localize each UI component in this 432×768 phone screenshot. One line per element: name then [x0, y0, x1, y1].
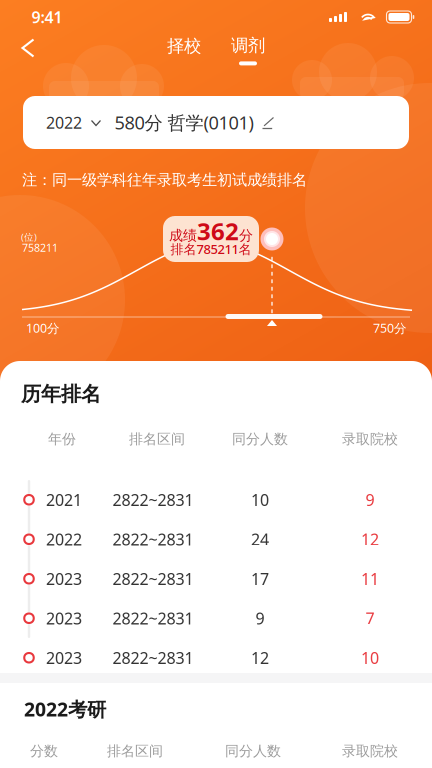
staticText: 2022 — [46, 529, 82, 550]
staticText: 9 — [255, 608, 264, 629]
staticText: 2822~2831 — [112, 647, 193, 668]
staticText: 12 — [361, 529, 379, 550]
staticText: 注：同一级学科往年录取考生初试成绩排名 — [22, 170, 307, 189]
staticText: 12 — [251, 647, 269, 668]
staticText: 2022 — [46, 112, 82, 133]
button[interactable]: 2023 — [0, 559, 432, 599]
staticText: 750分 — [373, 319, 407, 336]
staticText: 排名区间 — [107, 742, 163, 760]
staticText: 择校 — [167, 35, 201, 57]
staticText: 580分 哲学(0101) — [114, 110, 253, 135]
button[interactable]: 2023 — [0, 599, 432, 638]
button[interactable]: 调剂 — [222, 28, 274, 72]
staticText: 2021 — [46, 489, 82, 510]
staticText: 历年排名 — [21, 381, 101, 407]
button[interactable]: 2023 — [0, 638, 432, 678]
button[interactable]: 择校 — [158, 26, 210, 66]
staticText: 同分人数 — [232, 430, 288, 448]
staticText: 17 — [251, 568, 269, 589]
staticText: 年份 — [48, 430, 76, 448]
staticText: 100分 — [26, 319, 60, 336]
staticText: 24 — [251, 529, 269, 550]
staticText: 11 — [361, 568, 379, 589]
staticText: (位) — [21, 230, 37, 243]
staticText: 9:41 — [31, 6, 62, 28]
staticText: 排名785211名 — [170, 240, 251, 258]
staticText: 2023 — [46, 608, 82, 629]
staticText: 同分人数 — [225, 742, 281, 760]
staticText: 362 — [197, 215, 239, 247]
staticText: 成绩 — [169, 227, 197, 244]
staticText: 10 — [361, 647, 379, 668]
staticText: 7 — [365, 608, 374, 629]
staticText: 2822~2831 — [112, 568, 193, 589]
staticText: 分数 — [30, 742, 58, 760]
staticText: 2822~2831 — [112, 608, 193, 629]
staticText: 排名区间 — [129, 430, 185, 448]
staticText: 2822~2831 — [112, 529, 193, 550]
staticText: 2023 — [46, 568, 82, 589]
staticText: 758211 — [22, 240, 58, 255]
button[interactable]: 2022 — [23, 96, 409, 149]
staticText: 2822~2831 — [112, 489, 193, 510]
staticText: 10 — [251, 489, 269, 510]
staticText: 2022考研 — [24, 696, 106, 722]
button[interactable]: Back — [6, 26, 50, 70]
staticText: 调剂 — [231, 35, 265, 56]
staticText: 2023 — [46, 647, 82, 668]
staticText: 分 — [239, 227, 253, 244]
button[interactable]: 2021 — [0, 480, 432, 520]
staticText: 录取院校 — [342, 742, 398, 760]
button[interactable]: 2022 — [0, 520, 432, 559]
staticText: 录取院校 — [342, 430, 398, 448]
staticText: 9 — [365, 489, 374, 510]
